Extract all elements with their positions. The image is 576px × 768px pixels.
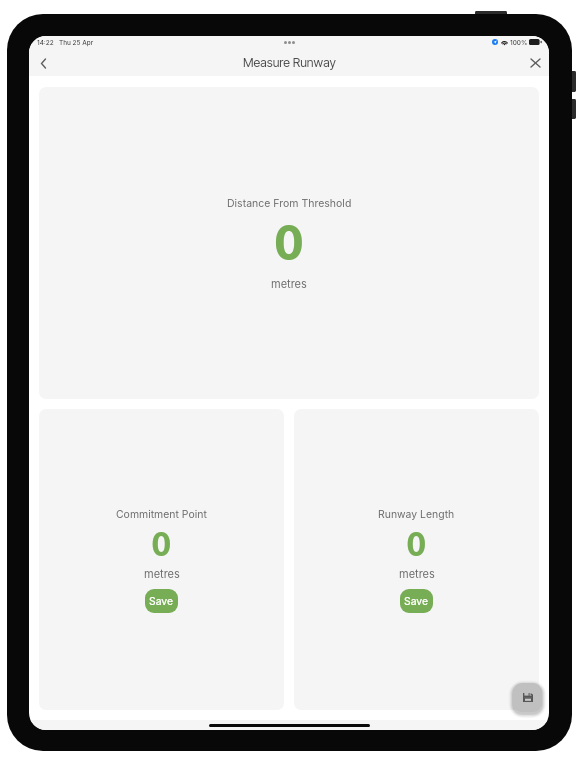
- staticText: Runway Length: [378, 508, 455, 521]
- staticText: metres: [144, 567, 180, 580]
- staticText: Commitment Point: [116, 508, 207, 521]
- staticText: 0: [407, 524, 426, 562]
- staticText: metres: [399, 567, 435, 580]
- staticText: Measure Runway: [243, 55, 336, 70]
- staticText: 0: [275, 213, 303, 271]
- staticText: Thu 25 Apr: [59, 39, 94, 47]
- staticText: Save: [404, 595, 429, 608]
- button[interactable]: Save: [400, 589, 433, 613]
- button[interactable]: Back: [31, 51, 55, 75]
- staticText: Save: [149, 595, 174, 608]
- button[interactable]: Save measurement: [513, 683, 542, 712]
- staticText: 0: [152, 524, 171, 562]
- staticText: 14:22: [37, 39, 54, 47]
- button[interactable]: Save: [145, 589, 178, 613]
- button[interactable]: Commitment Point: [39, 409, 284, 710]
- button[interactable]: Runway Length: [294, 409, 539, 710]
- staticText: 100%: [510, 39, 528, 47]
- button[interactable]: Close: [523, 51, 547, 75]
- staticText: Distance From Threshold: [227, 197, 352, 210]
- button[interactable]: Distance From Threshold: [39, 87, 539, 399]
- staticText: metres: [271, 277, 307, 290]
